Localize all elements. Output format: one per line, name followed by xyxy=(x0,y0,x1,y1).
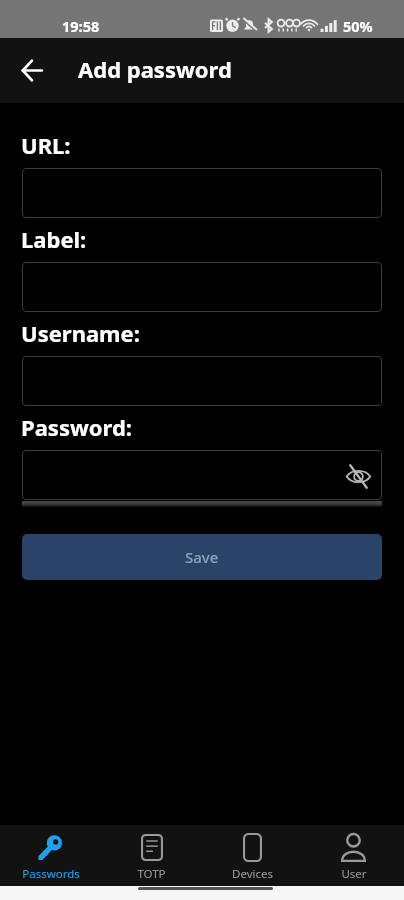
button[interactable]: Save xyxy=(22,534,382,580)
button[interactable] xyxy=(22,356,382,406)
button[interactable]: Back xyxy=(14,52,50,88)
button[interactable] xyxy=(22,450,382,500)
button[interactable]: Show password xyxy=(341,458,375,492)
staticText: Username: xyxy=(21,318,140,348)
staticText: URL: xyxy=(21,130,71,160)
staticText: Devices xyxy=(232,866,273,882)
button[interactable] xyxy=(22,262,382,312)
staticText: Password: xyxy=(21,412,132,442)
staticText: 19:58 xyxy=(62,16,100,36)
button[interactable]: Passwords xyxy=(0,825,101,886)
staticText: Add password xyxy=(78,54,232,84)
button[interactable]: Devices xyxy=(202,825,303,886)
staticText: User xyxy=(341,866,367,882)
button[interactable] xyxy=(22,168,382,218)
staticText: Save xyxy=(185,547,219,567)
button[interactable]: User xyxy=(303,825,404,886)
button[interactable]: TOTP xyxy=(101,825,202,886)
staticText: 50% xyxy=(343,16,373,36)
staticText: Label: xyxy=(21,224,87,254)
staticText: Passwords xyxy=(22,866,80,882)
staticText: TOTP xyxy=(137,866,166,882)
